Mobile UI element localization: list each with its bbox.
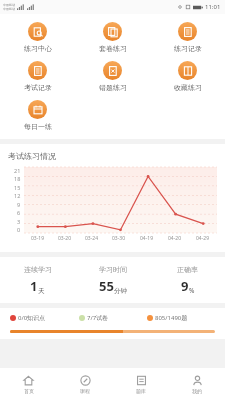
button[interactable]: 我的 xyxy=(169,375,225,394)
button[interactable]: 首页 xyxy=(0,375,57,394)
staticText: 0/0知识点 xyxy=(18,314,46,322)
staticText: % xyxy=(189,286,195,295)
staticText: 03-20 xyxy=(58,235,72,242)
button[interactable]: 收藏练习 xyxy=(150,59,225,94)
staticText: 练习中心 xyxy=(24,44,52,53)
button[interactable]: 套卷练习 xyxy=(75,20,150,55)
staticText: 18 xyxy=(14,175,21,182)
button[interactable]: 连续学习 xyxy=(0,265,75,295)
staticText: 分钟 xyxy=(114,287,127,295)
button[interactable]: 考试记录 xyxy=(0,59,75,94)
button[interactable]: 题库 xyxy=(113,375,169,394)
staticText: 03-19 xyxy=(31,235,45,242)
button[interactable]: 错题练习 xyxy=(75,59,150,94)
staticText: 0 xyxy=(17,226,21,233)
staticText: 首页 xyxy=(24,388,34,394)
staticText: 9 xyxy=(17,201,21,208)
staticText: 04-29 xyxy=(196,235,210,242)
button[interactable]: 练习记录 xyxy=(150,20,225,55)
staticText: 考试记录 xyxy=(24,83,52,92)
staticText: 中国移动 xyxy=(3,7,15,11)
staticText: 课程 xyxy=(80,388,90,394)
staticText: 805/1490题 xyxy=(155,314,188,322)
staticText: 03-24 xyxy=(85,235,99,242)
staticText: 正确率 xyxy=(177,265,198,274)
staticText: 收藏练习 xyxy=(174,83,202,92)
staticText: 15 xyxy=(14,184,21,191)
staticText: 我的 xyxy=(192,388,202,394)
staticText: 9 xyxy=(181,277,189,295)
staticText: 考试练习情况 xyxy=(8,151,56,161)
staticText: 12 xyxy=(14,192,21,199)
staticText: 6 xyxy=(17,209,21,216)
staticText: 套卷练习 xyxy=(99,44,127,53)
staticText: 天 xyxy=(38,287,45,295)
button[interactable]: 课程 xyxy=(57,375,113,394)
staticText: 55 xyxy=(99,277,114,295)
staticText: 学习时间 xyxy=(99,265,127,274)
staticText: 错题练习 xyxy=(99,83,127,92)
staticText: 04-20 xyxy=(168,235,182,242)
button[interactable]: 每日一练 xyxy=(0,98,75,133)
staticText: 04-19 xyxy=(140,235,154,242)
staticText: 每日一练 xyxy=(24,122,52,131)
staticText: 03-30 xyxy=(112,235,126,242)
button[interactable]: 正确率 xyxy=(150,265,225,295)
staticText: 中国移动 xyxy=(3,3,15,7)
staticText: 题库 xyxy=(136,388,146,394)
staticText: 21 xyxy=(14,167,21,174)
staticText: 练习记录 xyxy=(174,44,202,53)
button[interactable]: 学习时间 xyxy=(75,265,150,295)
staticText: 1 xyxy=(30,277,38,295)
staticText: 11:01 xyxy=(205,3,221,11)
button[interactable]: 练习中心 xyxy=(0,20,75,55)
staticText: 3 xyxy=(17,218,21,225)
staticText: 7/7试卷 xyxy=(87,314,109,322)
staticText: 连续学习 xyxy=(24,265,52,274)
